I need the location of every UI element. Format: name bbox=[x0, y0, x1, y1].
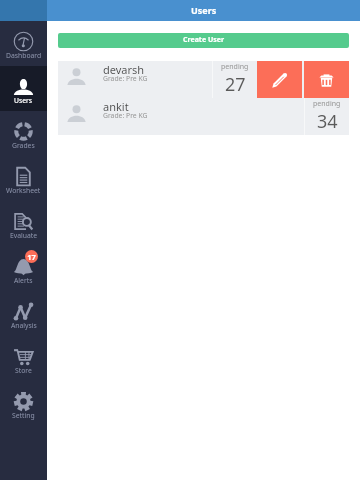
button[interactable]: Worksheet bbox=[0, 156, 47, 201]
button[interactable]: Delete bbox=[304, 61, 349, 98]
button[interactable]: Analysis bbox=[0, 291, 47, 336]
staticText: 34 bbox=[317, 109, 338, 134]
button[interactable]: Store bbox=[0, 336, 47, 381]
staticText: Analysis bbox=[11, 321, 37, 330]
button[interactable]: Users bbox=[0, 66, 47, 111]
button[interactable]: Dashboard bbox=[0, 21, 47, 66]
button[interactable]: Create User bbox=[58, 33, 349, 48]
staticText: Store bbox=[15, 366, 32, 375]
staticText: Grade: Pre KG bbox=[103, 111, 148, 120]
button[interactable]: Grades bbox=[0, 111, 47, 156]
staticText: Alerts bbox=[14, 276, 33, 285]
staticText: 17 bbox=[27, 252, 36, 262]
button[interactable]: ankit bbox=[58, 98, 349, 135]
button[interactable]: Edit bbox=[257, 61, 302, 98]
staticText: Evaluate bbox=[10, 231, 38, 240]
button[interactable]: devarsh bbox=[58, 61, 349, 98]
staticText: Grade: Pre KG bbox=[103, 74, 148, 83]
staticText: pending bbox=[221, 62, 249, 72]
staticText: Setting bbox=[12, 411, 35, 420]
button[interactable]: 17 bbox=[0, 246, 47, 291]
staticText: 27 bbox=[225, 72, 246, 97]
button[interactable]: Evaluate bbox=[0, 201, 47, 246]
staticText: Create User bbox=[183, 35, 225, 45]
staticText: Users bbox=[191, 4, 217, 16]
staticText: Grades bbox=[12, 141, 35, 150]
staticText: pending bbox=[313, 99, 341, 109]
button[interactable]: Setting bbox=[0, 381, 47, 426]
staticText: Users bbox=[14, 96, 33, 105]
staticText: devarsh bbox=[103, 62, 145, 77]
staticText: Worksheet bbox=[6, 186, 41, 195]
staticText: ankit bbox=[103, 99, 129, 114]
staticText: Dashboard bbox=[6, 51, 42, 60]
